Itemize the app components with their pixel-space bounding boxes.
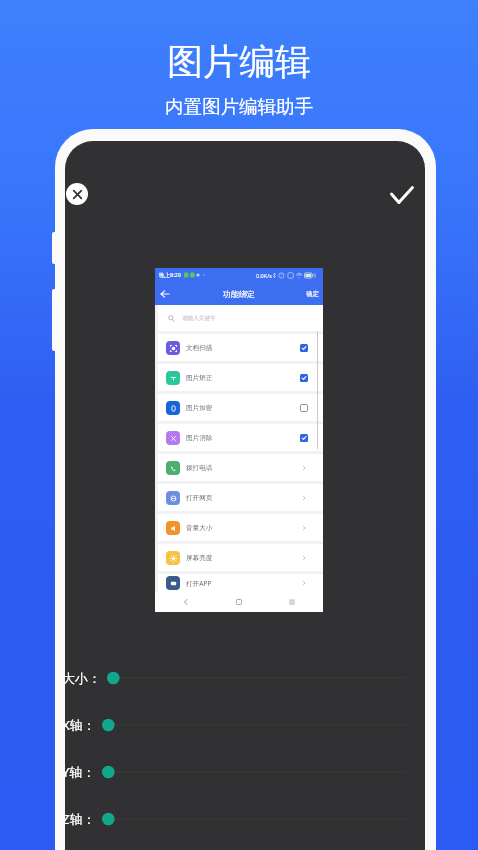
button[interactable]: 打开APP (166, 574, 308, 592)
staticText: 文档扫描 (186, 344, 213, 352)
staticText: 0.0K/s (256, 272, 272, 279)
staticText: 打开网页 (186, 494, 213, 502)
staticText: 图片加密 (186, 404, 213, 412)
staticText: 功能绑定 (223, 289, 255, 299)
button[interactable]: 图片矫正 (166, 364, 308, 391)
staticText: 图片编辑 (167, 39, 311, 84)
button[interactable]: Z轴： (65, 807, 422, 831)
staticText: 请输入关键字 (182, 315, 216, 322)
staticText: 图片矫正 (186, 374, 213, 382)
button[interactable]: 图片加密 (166, 394, 308, 421)
button[interactable]: 拨打电话 (166, 454, 308, 481)
staticText: 确定 (306, 290, 319, 298)
button[interactable]: Back (155, 284, 175, 304)
button[interactable]: 确定 (306, 290, 319, 298)
button[interactable]: 屏幕亮度 (166, 544, 308, 571)
staticText: Y轴： (65, 763, 96, 781)
staticText: 图片消除 (186, 434, 213, 442)
button[interactable]: 文档扫描 (166, 334, 308, 361)
button[interactable]: X轴： (65, 713, 422, 737)
button[interactable]: 打开网页 (166, 484, 308, 511)
staticText: 屏幕亮度 (186, 554, 213, 562)
staticText: 晚上8:29 (159, 271, 181, 279)
staticText: Z轴： (65, 810, 96, 828)
button[interactable]: 图片消除 (166, 424, 308, 451)
staticText: 打开APP (186, 579, 212, 588)
button[interactable]: Close (66, 183, 88, 205)
staticText: 内置图片编辑助手 (165, 95, 313, 118)
button[interactable]: Home (232, 595, 246, 609)
staticText: 拨打电话 (186, 464, 213, 472)
button[interactable]: Y轴： (65, 760, 422, 784)
staticText: X轴： (65, 716, 96, 734)
button[interactable]: Back (179, 595, 193, 609)
button[interactable]: 大小： (65, 666, 422, 690)
button[interactable]: Confirm (383, 176, 421, 214)
staticText: 大小： (65, 670, 101, 686)
button[interactable]: Recents (285, 595, 299, 609)
staticText: 音量大小 (186, 524, 213, 532)
button[interactable]: 音量大小 (166, 514, 308, 541)
